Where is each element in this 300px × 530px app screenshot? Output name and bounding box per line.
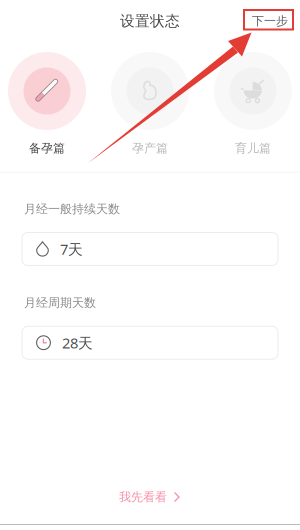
staticText: 育儿篇 bbox=[235, 141, 271, 156]
staticText: 孕产篇 bbox=[132, 141, 168, 156]
button[interactable]: 7天 bbox=[22, 232, 278, 265]
button[interactable]: 育儿篇 bbox=[214, 52, 292, 156]
staticText: 28天 bbox=[62, 333, 93, 352]
staticText: 月经周期天数 bbox=[24, 295, 96, 310]
button[interactable]: 我先看看 bbox=[119, 484, 181, 510]
staticText: 我先看看 bbox=[119, 490, 167, 504]
staticText: 下一步 bbox=[252, 14, 288, 28]
staticText: 备孕篇 bbox=[29, 141, 65, 156]
button[interactable]: 孕产篇 bbox=[111, 52, 189, 156]
button[interactable]: 备孕篇 bbox=[8, 52, 86, 156]
button[interactable]: 28天 bbox=[22, 326, 278, 359]
button[interactable]: 下一步 bbox=[246, 7, 294, 35]
staticText: 设置状态 bbox=[120, 12, 180, 30]
staticText: 7天 bbox=[60, 239, 83, 259]
staticText: 月经一般持续天数 bbox=[24, 202, 120, 216]
